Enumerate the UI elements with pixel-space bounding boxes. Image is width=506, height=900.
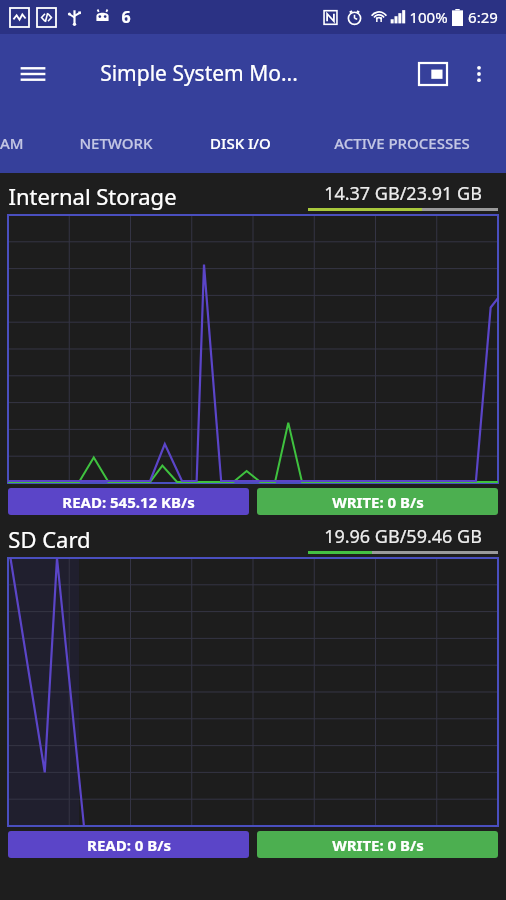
button[interactable]: ACTIVE PROCESSES	[298, 113, 506, 173]
button[interactable]: NETWORK	[48, 113, 183, 173]
staticText: RAM	[0, 133, 24, 153]
staticText: 100%	[409, 7, 448, 27]
staticText: WRITE: 0 B/s	[332, 492, 424, 512]
staticText: DISK I/O	[210, 133, 271, 153]
staticText: 6:29	[468, 7, 498, 27]
staticText: NETWORK	[79, 133, 153, 153]
staticText: SD Card	[8, 524, 91, 554]
staticText: 14.37 GB/23.91 GB	[324, 181, 482, 206]
button[interactable]: RAM	[0, 113, 48, 173]
button[interactable]: READ: 0 B/s	[8, 831, 249, 858]
staticText: ACTIVE PROCESSES	[334, 133, 470, 153]
button[interactable]: More options	[456, 51, 502, 97]
button[interactable]: WRITE: 0 B/s	[257, 488, 498, 515]
staticText: Simple System Mo...	[100, 59, 298, 88]
staticText: Internal Storage	[8, 181, 177, 211]
button[interactable]: READ: 545.12 KB/s	[8, 488, 249, 515]
button[interactable]: DISK I/O	[183, 113, 298, 173]
staticText: 6	[121, 6, 131, 28]
button[interactable]: Open navigation drawer	[10, 51, 56, 97]
staticText: WRITE: 0 B/s	[332, 835, 424, 855]
staticText: READ: 0 B/s	[87, 835, 171, 855]
staticText: 19.96 GB/59.46 GB	[324, 524, 482, 549]
button[interactable]: WRITE: 0 B/s	[257, 831, 498, 858]
button[interactable]: Picture in picture	[410, 51, 456, 97]
staticText: READ: 545.12 KB/s	[62, 492, 195, 512]
